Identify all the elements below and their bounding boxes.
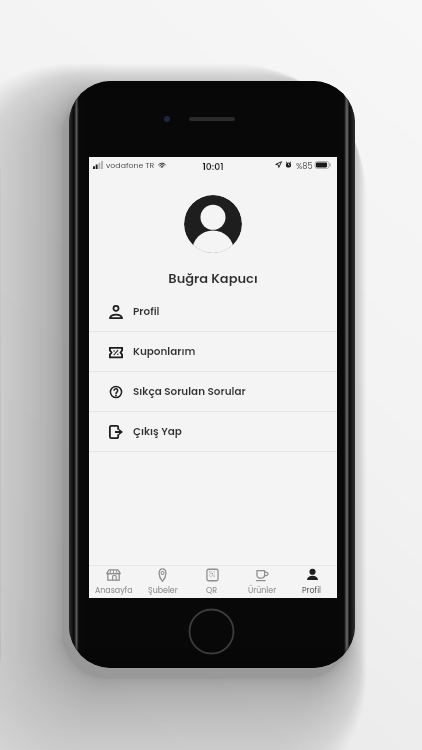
- staticText: 10:01: [89, 160, 337, 173]
- staticText: Anasayfa: [95, 585, 133, 596]
- staticText: %85: [296, 160, 313, 171]
- button[interactable]: Profil: [89, 292, 337, 332]
- staticText: Şubeler: [148, 585, 178, 596]
- button[interactable]: Sıkça Sorulan Sorular: [89, 372, 337, 412]
- button[interactable]: Profil: [287, 566, 337, 598]
- button[interactable]: QR: [187, 566, 237, 598]
- staticText: Sıkça Sorulan Sorular: [133, 384, 246, 399]
- staticText: Profil: [302, 585, 322, 596]
- button[interactable]: Anasayfa: [89, 566, 138, 598]
- staticText: Buğra Kapucı: [89, 269, 337, 287]
- button[interactable]: Şubeler: [138, 566, 187, 598]
- staticText: QR: [206, 585, 218, 596]
- staticText: Profil: [133, 304, 160, 319]
- button[interactable]: Kuponlarım: [89, 332, 337, 372]
- staticText: Kuponlarım: [133, 344, 196, 359]
- staticText: vodafone TR: [106, 160, 155, 171]
- button[interactable]: Çıkış Yap: [89, 412, 337, 452]
- staticText: Çıkış Yap: [133, 424, 182, 439]
- staticText: Ürünler: [248, 585, 277, 596]
- button[interactable]: Ürünler: [237, 566, 287, 598]
